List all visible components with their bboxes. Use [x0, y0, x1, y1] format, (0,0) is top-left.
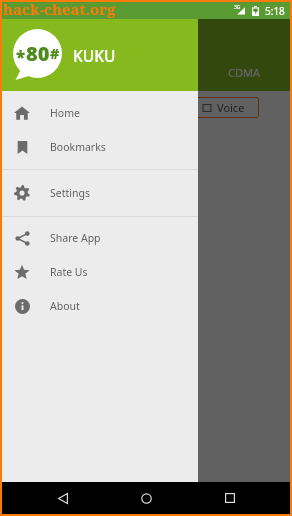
button[interactable]: Voice [194, 97, 259, 118]
button[interactable]: Home [2, 96, 198, 130]
button[interactable]: Bookmarks [2, 130, 198, 164]
staticText: # [50, 44, 60, 63]
staticText: 80 [26, 40, 50, 67]
button[interactable]: Home [123, 482, 169, 514]
staticText: Share App [50, 231, 101, 245]
staticText: hack-cheat.org [3, 0, 116, 19]
staticText: * [16, 45, 26, 68]
staticText: Voice [217, 100, 245, 115]
staticText: Rate Us [50, 265, 88, 279]
staticText: Settings [50, 186, 90, 200]
button[interactable]: Share App [2, 221, 198, 255]
button[interactable]: Recent apps [207, 482, 253, 514]
staticText: Home [50, 106, 80, 120]
staticText: 3G [234, 4, 241, 11]
staticText: About [50, 299, 80, 313]
staticText: CDMA [228, 65, 260, 80]
button[interactable]: About [2, 289, 198, 323]
staticText: Bookmarks [50, 140, 106, 154]
button[interactable]: Back [40, 482, 86, 514]
staticText: 5:18 [265, 4, 285, 18]
staticText: KUKU [73, 45, 116, 66]
button[interactable]: Settings [2, 176, 198, 210]
button[interactable]: Rate Us [2, 255, 198, 289]
